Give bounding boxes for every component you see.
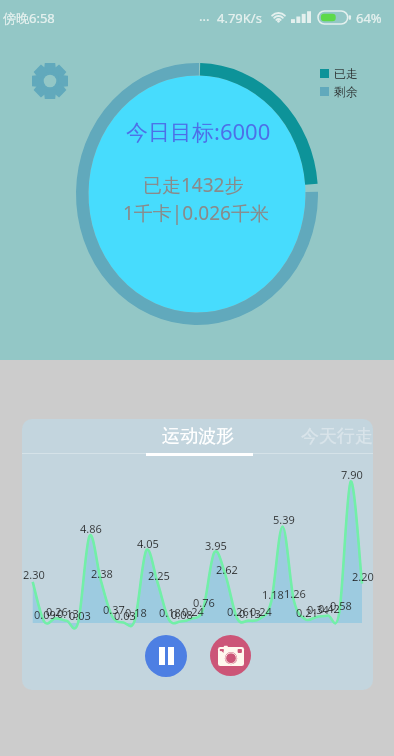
staticText: 0.03 (114, 608, 136, 623)
staticText: 0.03 (69, 608, 91, 623)
staticText: 0.26 (227, 604, 249, 619)
staticText: 0.58 (330, 598, 352, 613)
staticText: 0.21 (296, 605, 318, 620)
staticText: 2.20 (352, 569, 374, 584)
staticText: 2.62 (216, 562, 238, 577)
staticText: 2.30 (23, 567, 45, 582)
staticText: 1.18 (262, 587, 284, 602)
staticText: 0.37 (103, 602, 125, 617)
staticText: 3.95 (205, 538, 227, 553)
staticText: 1.26 (284, 586, 306, 601)
staticText: 4.86 (80, 521, 102, 536)
staticText: 0.42 (318, 601, 340, 616)
staticText: 0.18 (159, 605, 181, 620)
staticText: 今日目标:6000 (126, 116, 271, 146)
button[interactable]: 今天行走 (267, 419, 373, 453)
staticText: 已走1432步 (143, 172, 244, 198)
staticText: 0.09 (34, 607, 56, 622)
staticText: 0.13 (57, 606, 79, 621)
staticText: 4.79K/s (217, 9, 262, 27)
staticText: 7.90 (341, 467, 363, 482)
button[interactable]: Camera (210, 635, 251, 676)
staticText: 0.34 (307, 602, 329, 617)
staticText: 0.18 (125, 605, 147, 620)
staticText: 2.38 (91, 566, 113, 581)
staticText: 今天行走 (301, 425, 373, 448)
staticText: ... (199, 7, 210, 25)
staticText: 运动波形 (162, 425, 234, 448)
staticText: 5.39 (273, 512, 295, 527)
button[interactable]: 运动波形 (128, 419, 267, 453)
staticText: 剩余 (334, 84, 358, 99)
staticText: 已走 (334, 66, 358, 81)
staticText: 0.24 (182, 604, 204, 619)
staticText: 0.13 (239, 606, 261, 621)
staticText: 0.24 (250, 604, 272, 619)
staticText: 0.76 (193, 595, 215, 610)
button[interactable]: Pause (145, 635, 187, 677)
staticText: 0.08 (171, 607, 193, 622)
staticText: 0.26 (46, 604, 68, 619)
button[interactable]: Settings (32, 63, 68, 99)
staticText: 2.25 (148, 568, 170, 583)
staticText: 4.05 (137, 536, 159, 551)
staticText: 傍晚6:58 (3, 9, 55, 27)
staticText: 64% (356, 9, 382, 27)
staticText: 1千卡|0.026千米 (123, 200, 269, 226)
